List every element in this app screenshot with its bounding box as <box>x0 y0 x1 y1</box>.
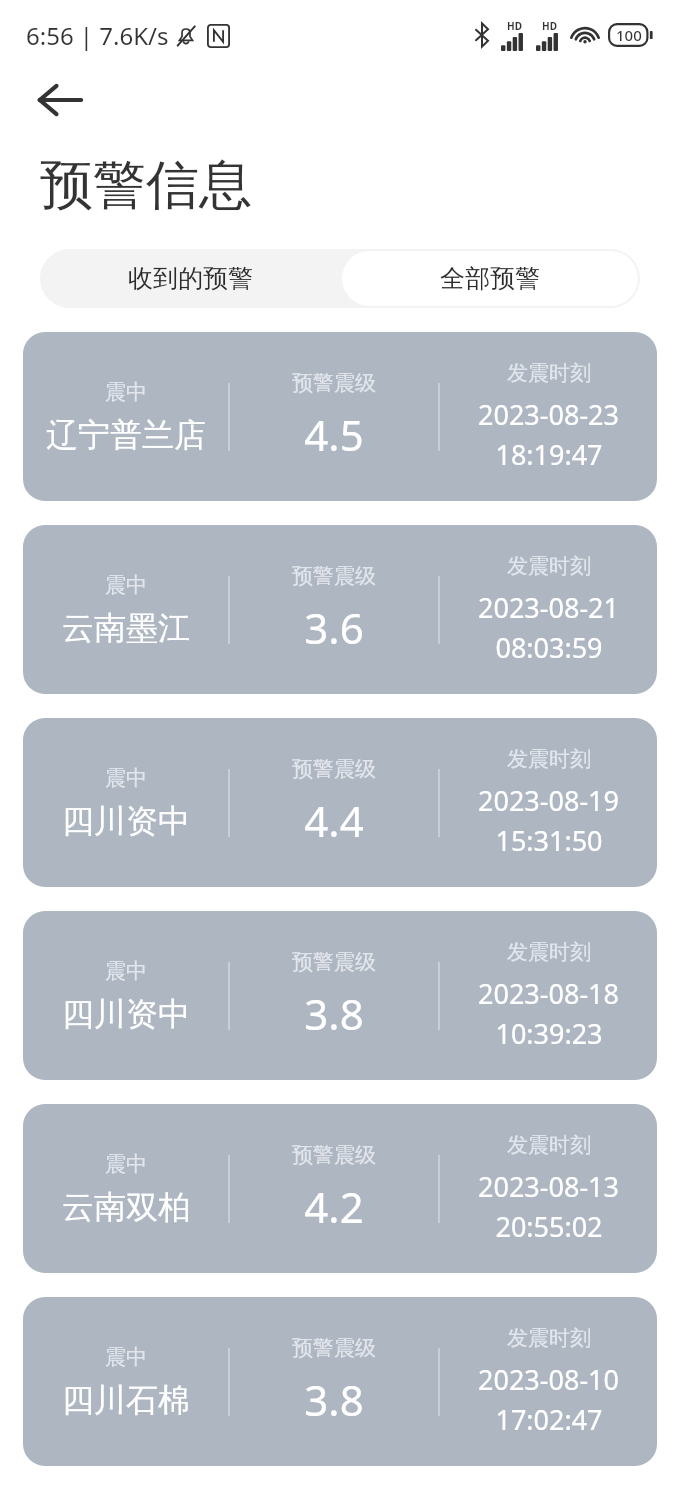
staticText: 四川石棉 <box>62 1380 190 1420</box>
staticText: 2023-08-23 <box>478 396 619 433</box>
button[interactable]: 收到的预警 <box>40 249 340 308</box>
staticText: 预警震级 <box>292 370 376 396</box>
button[interactable]: Back <box>30 70 90 130</box>
staticText: 四川资中 <box>62 801 190 841</box>
staticText: 发震时刻 <box>507 553 591 579</box>
staticText: 预警震级 <box>292 1142 376 1168</box>
staticText: HD <box>542 19 557 33</box>
staticText: 云南墨江 <box>62 608 190 648</box>
staticText: 预警震级 <box>292 1335 376 1361</box>
button[interactable]: 震中 <box>23 911 657 1080</box>
staticText: 10:39:23 <box>495 1015 603 1052</box>
staticText: 2023-08-18 <box>478 975 619 1012</box>
staticText: 发震时刻 <box>507 360 591 386</box>
staticText: 震中 <box>105 379 147 405</box>
staticText: 100 <box>616 25 642 45</box>
staticText: 收到的预警 <box>128 263 253 294</box>
staticText: 震中 <box>105 765 147 791</box>
button[interactable]: 全部预警 <box>342 251 638 306</box>
staticText: 2023-08-21 <box>478 589 619 626</box>
staticText: 全部预警 <box>440 263 540 294</box>
button[interactable]: 震中 <box>23 718 657 887</box>
staticText: HD <box>507 19 522 33</box>
staticText: 发震时刻 <box>507 1132 591 1158</box>
staticText: 发震时刻 <box>507 1325 591 1351</box>
staticText: 震中 <box>105 958 147 984</box>
button[interactable]: 震中 <box>23 332 657 501</box>
staticText: 20:55:02 <box>495 1208 603 1245</box>
staticText: 辽宁普兰店 <box>46 415 206 455</box>
staticText: 预警震级 <box>292 949 376 975</box>
staticText: 3.8 <box>304 1371 364 1428</box>
staticText: 3.6 <box>304 599 364 656</box>
staticText: 预警信息 <box>40 152 252 219</box>
staticText: 4.4 <box>304 792 364 849</box>
staticText: 3.8 <box>304 985 364 1042</box>
staticText: 四川资中 <box>62 994 190 1034</box>
staticText: 17:02:47 <box>495 1401 603 1438</box>
staticText: 震中 <box>105 572 147 598</box>
staticText: 2023-08-10 <box>478 1361 619 1398</box>
staticText: 4.2 <box>304 1178 364 1235</box>
staticText: 发震时刻 <box>507 939 591 965</box>
button[interactable]: 震中 <box>23 1297 657 1466</box>
staticText: 15:31:50 <box>495 822 603 859</box>
staticText: 震中 <box>105 1344 147 1370</box>
staticText: 18:19:47 <box>495 436 603 473</box>
staticText: 08:03:59 <box>495 629 603 666</box>
staticText: 预警震级 <box>292 756 376 782</box>
staticText: 震中 <box>105 1151 147 1177</box>
staticText: 云南双柏 <box>62 1187 190 1227</box>
staticText: 2023-08-19 <box>478 782 619 819</box>
staticText: 4.5 <box>304 406 364 463</box>
staticText: 6:56 | 7.6K/s <box>26 19 169 52</box>
button[interactable]: 震中 <box>23 1104 657 1273</box>
staticText: 发震时刻 <box>507 746 591 772</box>
staticText: 预警震级 <box>292 563 376 589</box>
staticText: 2023-08-13 <box>478 1168 619 1205</box>
button[interactable]: 震中 <box>23 525 657 694</box>
